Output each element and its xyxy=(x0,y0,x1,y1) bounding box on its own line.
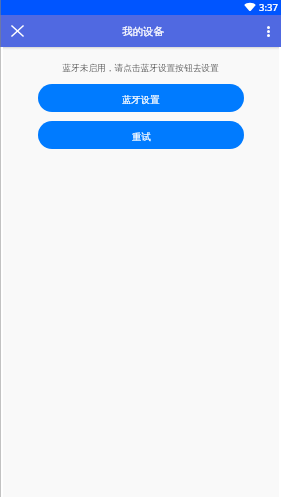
staticText: 3:37 xyxy=(259,1,278,14)
staticText: 蓝牙设置 xyxy=(122,94,160,106)
button[interactable]: 蓝牙设置 xyxy=(38,84,244,112)
button[interactable]: 重试 xyxy=(38,121,244,149)
staticText: 蓝牙未启用，请点击蓝牙设置按钮去设置 xyxy=(0,63,281,74)
staticText: 我的设备 xyxy=(122,25,164,38)
button[interactable]: More options xyxy=(256,15,281,47)
button[interactable]: Close xyxy=(0,15,34,47)
staticText: 重试 xyxy=(132,131,151,143)
